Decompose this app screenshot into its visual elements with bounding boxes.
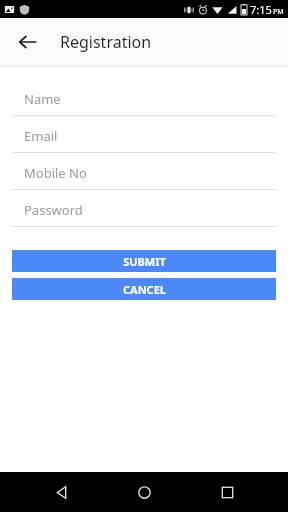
button[interactable]: CANCEL — [12, 278, 276, 300]
button[interactable]: Recent apps — [205, 472, 249, 512]
staticText: Registration — [60, 31, 152, 53]
button[interactable]: SUBMIT — [12, 250, 276, 272]
staticText: 7:15 — [250, 2, 272, 17]
button[interactable]: Name — [12, 83, 276, 120]
button[interactable]: Back — [39, 472, 83, 512]
button[interactable]: Back — [8, 22, 48, 62]
staticText: Password — [24, 201, 83, 219]
staticText: Mobile No — [24, 164, 87, 182]
button[interactable]: Password — [12, 194, 276, 231]
staticText: Name — [24, 90, 61, 108]
staticText: PM — [273, 7, 284, 17]
staticText: CANCEL — [123, 282, 166, 297]
staticText: Email — [24, 127, 58, 145]
button[interactable]: Mobile No — [12, 157, 276, 194]
button[interactable]: Home — [122, 472, 166, 512]
button[interactable]: Email — [12, 120, 276, 157]
staticText: SUBMIT — [123, 254, 166, 269]
